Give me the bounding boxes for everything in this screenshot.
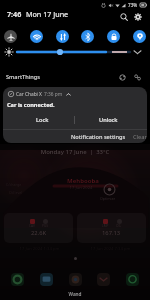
button[interactable]: Phone xyxy=(11,273,24,286)
button[interactable]: Gmail xyxy=(97,273,110,286)
button[interactable]: Settings xyxy=(132,11,143,22)
button[interactable]: Wi-Fi xyxy=(30,30,43,43)
button[interactable]: Airplane mode xyxy=(4,30,17,43)
button[interactable]: Collapse xyxy=(64,90,72,98)
staticText: Lock xyxy=(36,116,49,124)
staticText: LMP xyxy=(102,224,109,228)
button[interactable]: Bluetooth xyxy=(81,30,94,43)
staticText: 22.6K xyxy=(31,229,47,237)
staticText: CAV xyxy=(29,224,35,228)
staticText: Notification settings xyxy=(71,133,126,141)
staticText: 17 Jun 2024 xyxy=(6,185,150,191)
button[interactable]: Secure folder xyxy=(107,30,120,43)
staticText: SmartThings xyxy=(6,73,40,81)
staticText: Monday 17 June | 33°C xyxy=(0,148,150,156)
button[interactable]: Messages xyxy=(40,273,53,286)
staticText: 73% xyxy=(128,2,138,8)
staticText: 7:36 pm xyxy=(44,91,63,98)
button[interactable]: Notification settings xyxy=(69,131,128,143)
button[interactable]: Add device xyxy=(132,72,142,82)
staticText: Mon 17 June xyxy=(26,9,69,19)
button[interactable]: Expand brightness xyxy=(131,46,145,58)
staticText: Wand xyxy=(0,291,150,298)
button[interactable]: CAV xyxy=(4,213,73,243)
staticText: Optimize xyxy=(100,196,116,201)
button[interactable]: Lock xyxy=(3,113,74,127)
button[interactable]: LMP xyxy=(77,213,146,243)
staticText: Clear xyxy=(133,133,147,141)
staticText: Mehbooba xyxy=(8,177,150,185)
button[interactable]: Clear xyxy=(131,131,147,143)
staticText: OIL xyxy=(116,224,122,228)
staticText: 7:46 xyxy=(7,9,22,19)
button[interactable]: Location xyxy=(133,30,146,43)
button[interactable]: Devices xyxy=(117,72,127,82)
button[interactable]: Search xyxy=(118,11,129,22)
staticText: PGS xyxy=(42,224,48,228)
button[interactable]: Chrome xyxy=(69,273,82,286)
staticText: Car Chabi X xyxy=(16,91,42,98)
staticText: Car is connected. xyxy=(7,101,55,109)
button[interactable]: Mobile data xyxy=(56,30,69,43)
staticText: 167.13 xyxy=(102,229,121,237)
button[interactable]: Unlock xyxy=(75,113,147,127)
staticText: Unlock xyxy=(99,116,118,124)
button[interactable]: WhatsApp xyxy=(126,273,139,286)
